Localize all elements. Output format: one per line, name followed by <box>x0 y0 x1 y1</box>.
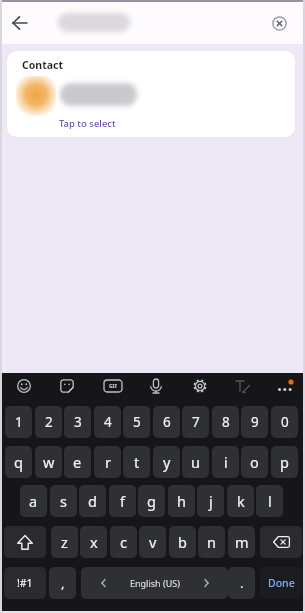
staticText: k <box>237 491 245 511</box>
button[interactable]: 7 <box>182 406 209 438</box>
button[interactable] <box>140 373 172 400</box>
staticText: w <box>43 452 55 472</box>
button[interactable]: s <box>50 485 77 517</box>
button[interactable]: i <box>212 446 239 478</box>
button[interactable]: , <box>49 567 76 599</box>
button[interactable]: t <box>123 446 150 478</box>
staticText: x <box>90 532 98 552</box>
button[interactable] <box>265 9 293 37</box>
staticText: Tap to select <box>59 117 116 130</box>
button[interactable]: . <box>228 567 255 599</box>
button[interactable]: u <box>182 446 209 478</box>
button[interactable] <box>6 9 34 37</box>
button[interactable]: !#1 <box>4 567 46 599</box>
button[interactable]: 9 <box>241 406 268 438</box>
button[interactable]: 8 <box>212 406 239 438</box>
button[interactable]: h <box>168 485 195 517</box>
button[interactable]: 3 <box>64 406 91 438</box>
button[interactable]: Done <box>260 567 302 599</box>
button[interactable]: r <box>94 446 121 478</box>
button[interactable]: p <box>271 446 298 478</box>
staticText: u <box>191 452 200 472</box>
staticText: . <box>240 574 244 592</box>
staticText: z <box>61 532 68 552</box>
staticText: f <box>120 491 125 511</box>
button[interactable]: a <box>20 485 47 517</box>
staticText: 0 <box>281 413 289 431</box>
staticText: o <box>250 452 259 472</box>
button[interactable]: e <box>64 446 91 478</box>
button[interactable] <box>269 373 301 400</box>
button[interactable]: 2 <box>35 406 62 438</box>
staticText: !#1 <box>17 576 33 590</box>
staticText: 1 <box>15 413 23 431</box>
button[interactable]: w <box>35 446 62 478</box>
staticText: p <box>280 452 289 472</box>
staticText: v <box>149 532 157 552</box>
staticText: j <box>209 491 213 511</box>
staticText: e <box>73 452 82 472</box>
button[interactable]: d <box>79 485 106 517</box>
button[interactable] <box>260 526 302 558</box>
staticText: r <box>105 452 111 472</box>
button[interactable]: 0 <box>271 406 298 438</box>
button[interactable] <box>226 373 258 400</box>
staticText: s <box>60 491 67 511</box>
staticText: 2 <box>45 413 53 431</box>
staticText: c <box>120 532 127 552</box>
staticText: 8 <box>222 413 230 431</box>
button[interactable]: v <box>139 526 166 558</box>
button[interactable]: 1 <box>5 406 32 438</box>
staticText: y <box>163 452 171 472</box>
button[interactable] <box>4 526 46 558</box>
staticText: a <box>29 491 38 511</box>
button[interactable]: 6 <box>153 406 180 438</box>
staticText: Done <box>268 576 295 590</box>
button[interactable] <box>8 373 40 400</box>
button[interactable]: q <box>5 446 32 478</box>
button[interactable] <box>58 13 130 32</box>
staticText: h <box>177 491 186 511</box>
button[interactable]: o <box>241 446 268 478</box>
button[interactable]: c <box>110 526 137 558</box>
staticText: b <box>178 532 187 552</box>
button[interactable] <box>97 373 129 400</box>
staticText: g <box>147 491 156 511</box>
staticText: , <box>61 574 65 592</box>
staticText: 4 <box>104 413 112 431</box>
staticText: Contact <box>22 58 63 72</box>
staticText: q <box>14 452 23 472</box>
button[interactable]: g <box>138 485 165 517</box>
button[interactable] <box>184 373 216 400</box>
button[interactable]: j <box>197 485 224 517</box>
button[interactable]: b <box>169 526 196 558</box>
button[interactable]: l <box>256 485 283 517</box>
staticText: d <box>88 491 97 511</box>
staticText: GIF <box>109 383 118 390</box>
staticText: 7 <box>192 413 200 431</box>
button[interactable]: Contact <box>7 51 295 137</box>
staticText: l <box>268 491 272 511</box>
staticText: 5 <box>133 413 141 431</box>
button[interactable]: m <box>228 526 255 558</box>
button[interactable]: z <box>51 526 78 558</box>
button[interactable]: k <box>227 485 254 517</box>
button[interactable]: 5 <box>123 406 150 438</box>
staticText: 9 <box>251 413 259 431</box>
staticText: 6 <box>163 413 171 431</box>
button[interactable]: f <box>109 485 136 517</box>
staticText: 3 <box>74 413 82 431</box>
staticText: n <box>207 532 216 552</box>
button[interactable]: English (US) <box>81 567 228 599</box>
button[interactable]: x <box>80 526 107 558</box>
staticText: English (US) <box>130 577 180 589</box>
button[interactable]: 4 <box>94 406 121 438</box>
staticText: t <box>134 452 140 472</box>
staticText: i <box>224 452 228 472</box>
button[interactable] <box>51 373 83 400</box>
button[interactable]: y <box>153 446 180 478</box>
staticText: m <box>235 532 249 552</box>
button[interactable]: n <box>198 526 225 558</box>
